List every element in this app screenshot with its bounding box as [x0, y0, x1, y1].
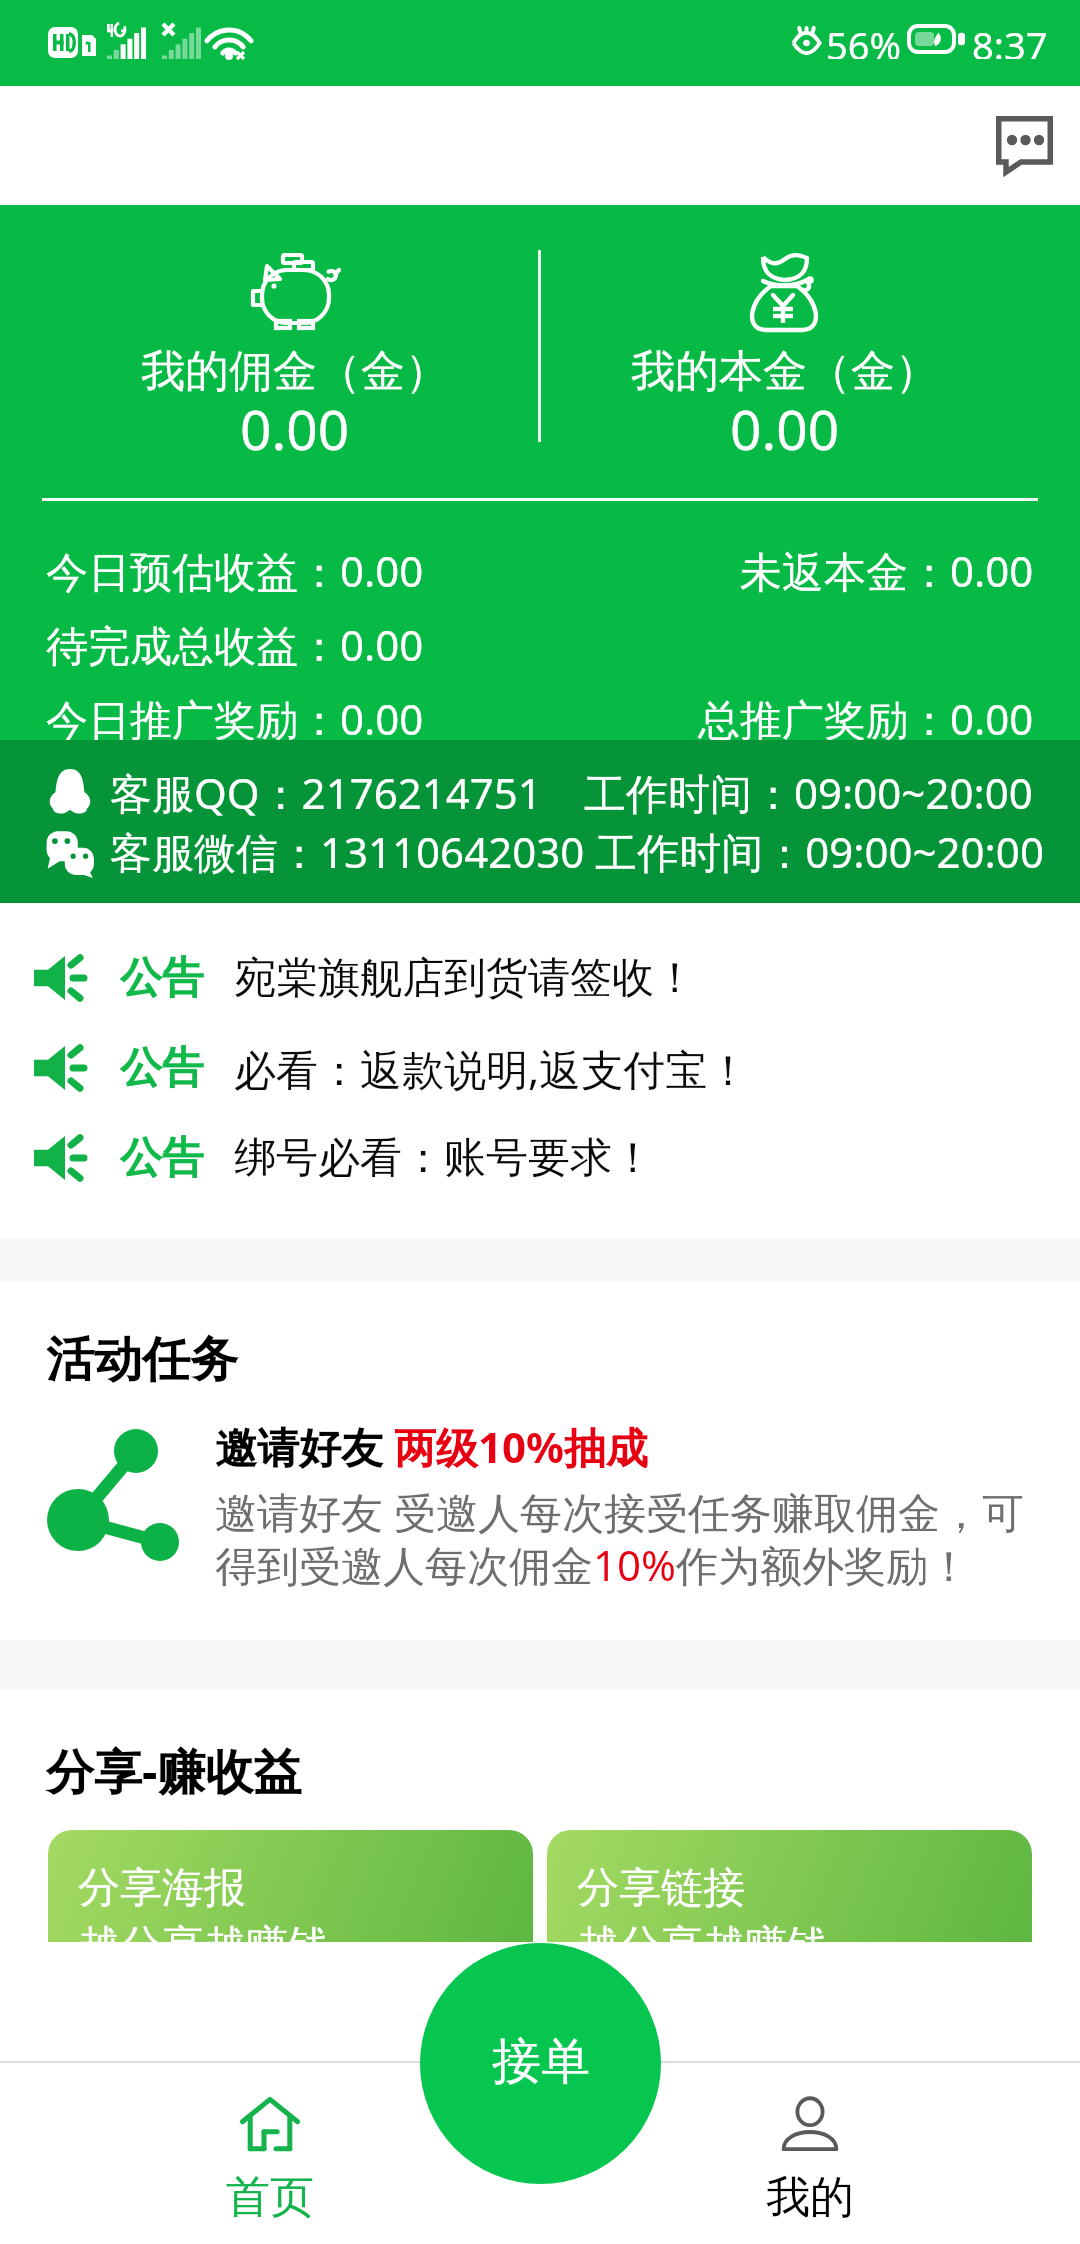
staticText: 越分享越赚钱 — [78, 1920, 330, 1942]
staticText: 未返本金：0.00 — [740, 542, 1034, 599]
button[interactable]: 我的 — [690, 2063, 930, 2244]
staticText: 8:37 — [972, 19, 1048, 59]
staticText: 必看：返款说明,返支付宝！ — [234, 1040, 750, 1097]
staticText: 我的 — [766, 2170, 854, 2225]
staticText: 分享链接 — [577, 1862, 745, 1915]
button[interactable]: 我的佣金（金） — [50, 205, 540, 496]
staticText: 越分享越赚钱 — [577, 1920, 829, 1942]
button[interactable]: 客服QQ：2176214751 — [0, 761, 1080, 824]
staticText: 56% — [826, 19, 902, 59]
staticText: 分享海报 — [78, 1862, 246, 1915]
button[interactable]: 我的本金（金） — [540, 205, 1030, 496]
staticText: 宛棠旗舰店到货请签收！ — [234, 952, 696, 1005]
button[interactable]: 公告 — [0, 1023, 1080, 1113]
staticText: 工作时间：09:00~20:00 — [584, 764, 1033, 821]
staticText: 待完成总收益：0.00 — [46, 616, 424, 673]
staticText: 邀请好友 受邀人每次接受任务赚取佣金，可得到受邀人每次佣金10%作为额外奖励！ — [215, 1483, 1040, 1593]
staticText: 公告 — [120, 1042, 204, 1095]
staticText: 我的佣金（金） — [141, 344, 449, 399]
button[interactable]: 首页 — [150, 2063, 390, 2244]
staticText: 分享-赚收益 — [46, 1738, 302, 1804]
staticText: 客服微信：13110642030 工作时间：09:00~20:00 — [110, 823, 1044, 880]
staticText: 今日推广奖励：0.00 — [46, 690, 424, 747]
staticText: 我的本金（金） — [631, 344, 939, 399]
button[interactable]: Messages — [984, 107, 1068, 183]
staticText: 0.00 — [240, 391, 350, 466]
button[interactable]: 公告 — [0, 1113, 1080, 1203]
staticText: 客服QQ：2176214751 — [110, 764, 542, 821]
button[interactable]: 分享链接 — [547, 1830, 1032, 1942]
staticText: 活动任务 — [46, 1330, 238, 1390]
button[interactable]: 客服微信：13110642030 工作时间：09:00~20:00 — [0, 820, 1080, 883]
button[interactable]: 邀请好友 两级10%抽成 — [0, 1418, 1080, 1593]
button[interactable]: 分享海报 — [48, 1830, 533, 1942]
button[interactable]: 公告 — [0, 933, 1080, 1023]
staticText: 首页 — [226, 2170, 314, 2225]
staticText: 0.00 — [730, 391, 840, 466]
staticText: 今日预估收益：0.00 — [46, 542, 424, 599]
staticText: 邀请好友 两级10%抽成 — [215, 1418, 648, 1475]
staticText: 公告 — [120, 1132, 204, 1185]
staticText: 绑号必看：账号要求！ — [234, 1132, 654, 1185]
button[interactable]: 接单 — [420, 1943, 661, 2184]
staticText: 接单 — [492, 2031, 590, 2093]
staticText: 总推广奖励：0.00 — [698, 690, 1034, 747]
staticText: 公告 — [120, 952, 204, 1005]
